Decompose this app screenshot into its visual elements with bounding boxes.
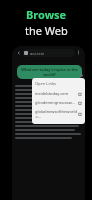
button[interactable]: aoi-test [22,49,75,57]
button[interactable]: More options [75,49,82,56]
staticText: aoi-test [30,51,45,56]
button[interactable]: Link options [79,73,84,78]
button[interactable]: What are today's topics in the world? [17,65,82,79]
button[interactable]: insidebtoday.com [35,89,82,98]
staticText: globalnewsoftheworld.c... [35,109,78,119]
staticText: glcodemingneuosw... [35,100,78,105]
staticText: Browse [26,7,67,22]
staticText: the Web [25,23,68,38]
staticText: Open Links [35,81,57,86]
staticText: What are today's topics in the world? [20,67,79,77]
staticText: insidebtoday.com [35,91,78,96]
button[interactable]: globalnewsoftheworld.c... [35,107,82,121]
button[interactable]: Back [15,49,22,56]
button[interactable]: glcodemingneuosw... [35,98,82,107]
